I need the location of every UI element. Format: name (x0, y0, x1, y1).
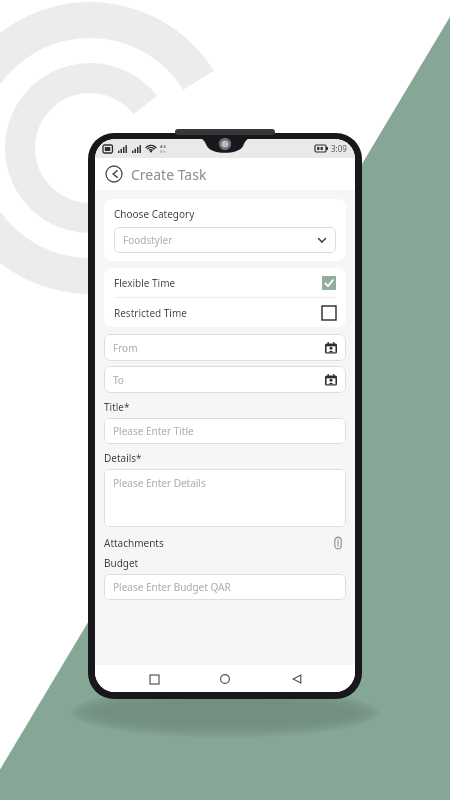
button[interactable]: Recents (141, 666, 167, 692)
staticText: K/s (160, 149, 166, 154)
staticText: Please Enter Title (113, 424, 194, 438)
button[interactable]: Back (105, 165, 123, 183)
button[interactable]: To (104, 366, 346, 393)
staticText: Please Enter Budget QAR (113, 580, 231, 594)
staticText: Create Task (131, 165, 207, 184)
button[interactable]: Back (284, 666, 310, 692)
staticText: Please Enter Details (113, 476, 206, 490)
button[interactable]: Flexible Time (114, 268, 336, 297)
staticText: Foodstyler (123, 233, 317, 247)
button[interactable]: Please Enter Title (104, 418, 346, 444)
button[interactable]: From (104, 334, 346, 361)
staticText: Restricted Time (114, 306, 322, 320)
staticText: Attachments (104, 536, 330, 550)
staticText: Title* (104, 400, 130, 414)
staticText: Choose Category (114, 207, 195, 221)
button[interactable]: Attach file (330, 535, 346, 551)
staticText: 4.6 (160, 144, 166, 149)
button[interactable]: Please Enter Details (104, 469, 346, 527)
button[interactable]: Please Enter Budget QAR (104, 574, 346, 600)
staticText: Details* (104, 451, 142, 465)
button[interactable]: Home (212, 666, 238, 692)
staticText: From (113, 341, 325, 355)
staticText: To (113, 373, 325, 387)
button[interactable]: Foodstyler (114, 227, 336, 253)
staticText: 3:09 (331, 143, 347, 154)
staticText: Budget (104, 556, 139, 570)
button[interactable]: Restricted Time (114, 298, 336, 327)
staticText: Flexible Time (114, 276, 322, 290)
